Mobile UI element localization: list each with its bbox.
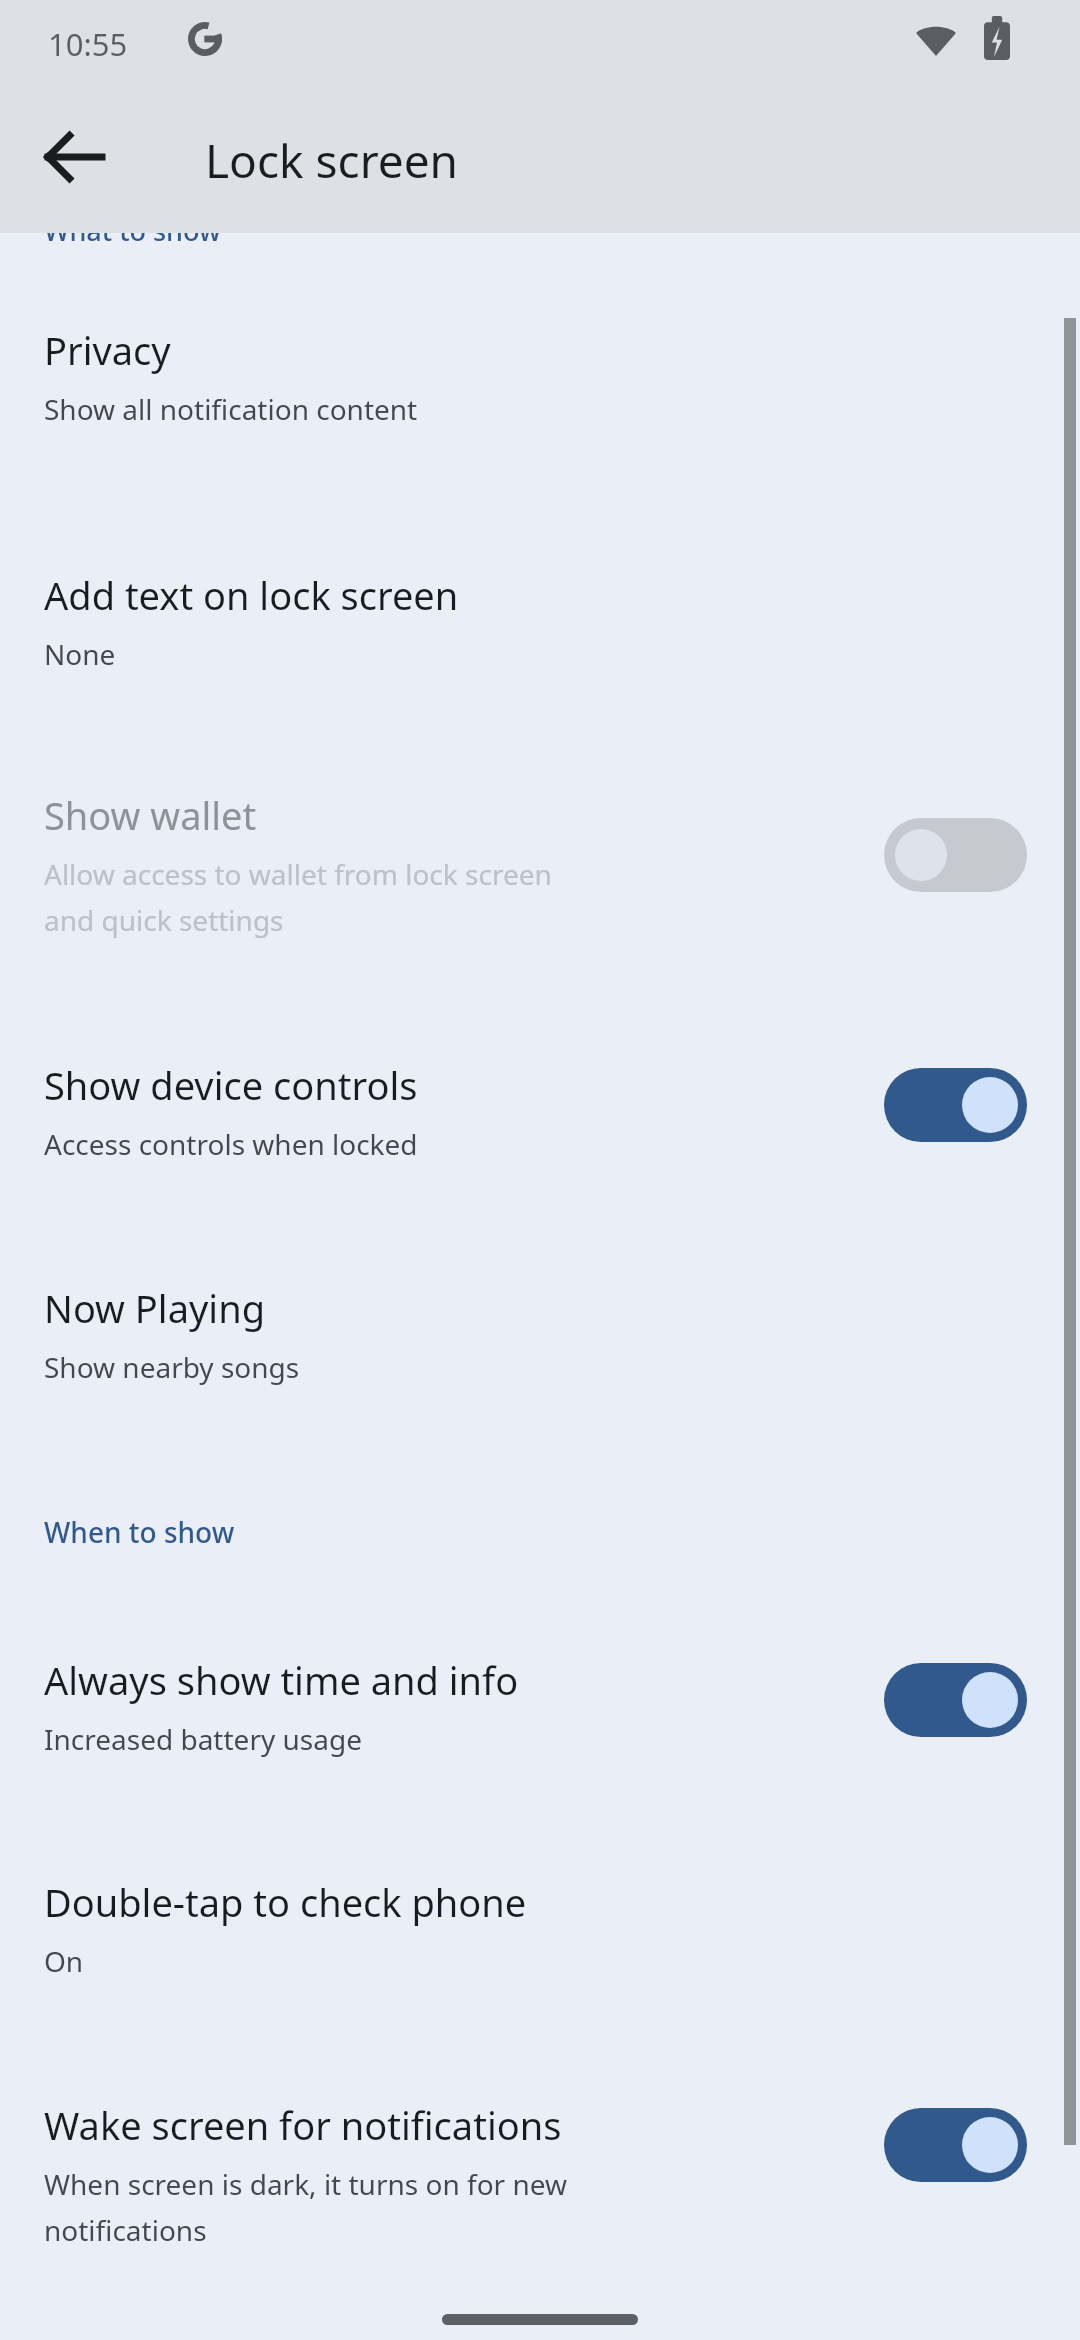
staticText: Wake screen for notifications bbox=[44, 2099, 562, 2151]
staticText: Show nearby songs bbox=[44, 1348, 300, 1386]
button[interactable]: Back bbox=[30, 112, 120, 202]
button[interactable]: Show wallet bbox=[0, 775, 1080, 975]
staticText: None bbox=[44, 635, 116, 673]
staticText: Lock screen bbox=[205, 129, 459, 192]
button[interactable]: Always show time and info bbox=[0, 1640, 1080, 1780]
staticText: Show device controls bbox=[44, 1059, 418, 1111]
button[interactable]: Add text on lock screen bbox=[0, 555, 1080, 695]
button[interactable]: Toggle on bbox=[884, 2108, 1027, 2182]
staticText: What to show bbox=[44, 212, 221, 249]
staticText: Now Playing bbox=[44, 1282, 266, 1334]
staticText: Access controls when locked bbox=[44, 1125, 418, 1163]
staticText: Show wallet bbox=[44, 789, 257, 841]
staticText: On bbox=[44, 1942, 84, 1980]
button[interactable]: Wake screen for notifications bbox=[0, 2085, 1080, 2285]
staticText: When screen is dark, it turns on for new… bbox=[44, 2165, 567, 2249]
staticText: Always show time and info bbox=[44, 1654, 519, 1706]
staticText: When to show bbox=[44, 1513, 235, 1551]
button[interactable]: Now Playing bbox=[0, 1268, 1080, 1408]
staticText: Double-tap to check phone bbox=[44, 1876, 527, 1928]
staticText: Privacy bbox=[44, 324, 171, 376]
staticText: Show all notification content bbox=[44, 390, 418, 428]
button[interactable]: Show device controls bbox=[0, 1045, 1080, 1185]
staticText: Add text on lock screen bbox=[44, 569, 459, 621]
button[interactable]: Double-tap to check phone bbox=[0, 1862, 1080, 2002]
button[interactable]: Toggle on bbox=[884, 1663, 1027, 1737]
button[interactable]: Toggle on bbox=[884, 1068, 1027, 1142]
button[interactable]: Privacy bbox=[0, 310, 1080, 450]
staticText: Increased battery usage bbox=[44, 1720, 362, 1758]
staticText: 10:55 bbox=[48, 23, 128, 65]
button[interactable]: Toggle off bbox=[884, 818, 1027, 892]
staticText: Allow access to wallet from lock screen … bbox=[44, 855, 552, 939]
